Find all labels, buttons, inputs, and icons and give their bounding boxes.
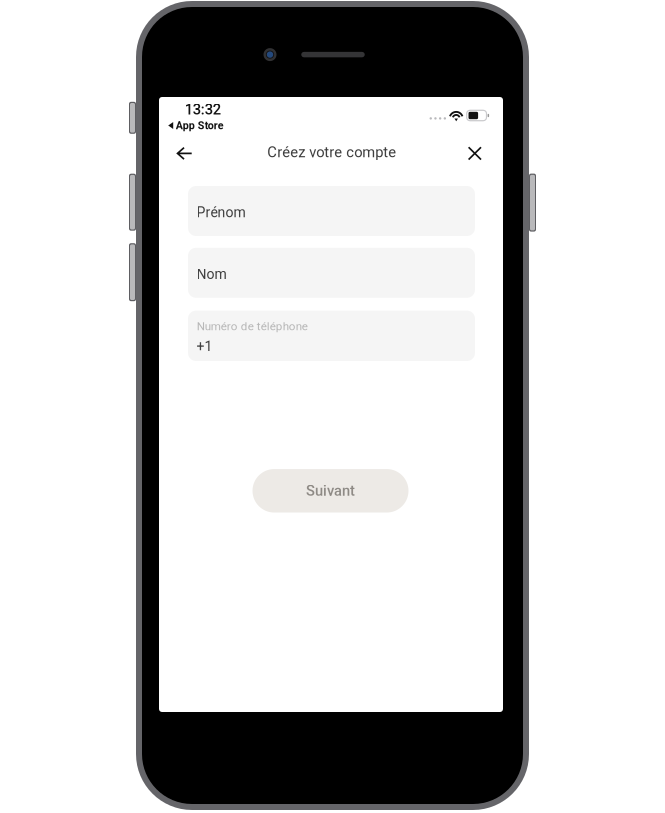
button[interactable]: Numéro de téléphone	[188, 311, 475, 361]
staticText: App Store	[176, 119, 224, 132]
button[interactable]: Nom	[188, 248, 475, 298]
staticText: Suivant	[306, 482, 355, 499]
button[interactable]: Back	[164, 134, 206, 172]
button[interactable]: Close	[454, 134, 496, 172]
staticText: Prénom	[196, 204, 245, 221]
staticText: Nom	[196, 266, 226, 282]
staticText: Créez votre compte	[267, 144, 396, 161]
staticText: Numéro de téléphone	[197, 319, 308, 333]
button[interactable]: Suivant	[252, 469, 408, 513]
staticText: +1	[196, 338, 212, 355]
staticText: 13:32	[185, 101, 221, 118]
button[interactable]: Prénom	[188, 186, 475, 236]
